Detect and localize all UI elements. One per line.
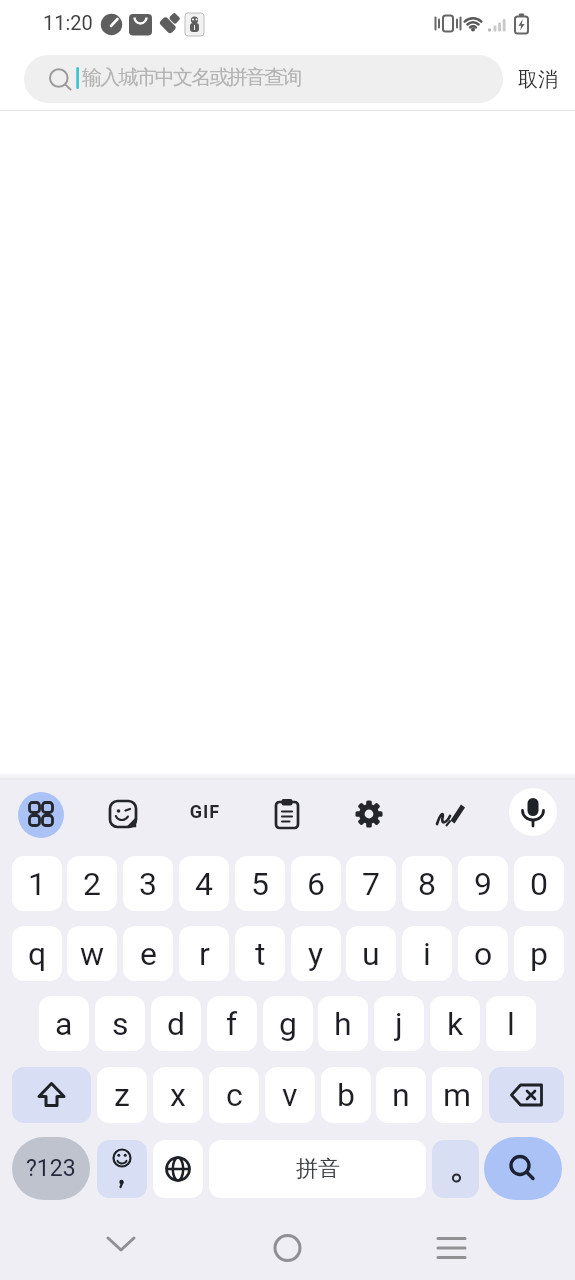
button[interactable]: h bbox=[318, 996, 368, 1051]
staticText: g bbox=[279, 1005, 297, 1043]
button[interactable]: t bbox=[235, 926, 285, 981]
button[interactable]: i bbox=[402, 926, 452, 981]
button[interactable]: 5 bbox=[235, 856, 285, 911]
staticText: u bbox=[362, 935, 380, 973]
button[interactable]: o bbox=[458, 926, 508, 981]
staticText: 取消 bbox=[518, 67, 558, 92]
button[interactable] bbox=[432, 1140, 479, 1198]
button[interactable] bbox=[18, 792, 64, 838]
staticText: h bbox=[334, 1005, 352, 1043]
button[interactable] bbox=[484, 1137, 562, 1200]
staticText: f bbox=[226, 1005, 238, 1043]
staticText: ?123 bbox=[26, 1155, 76, 1182]
button[interactable] bbox=[97, 1140, 147, 1198]
button[interactable]: z bbox=[97, 1067, 147, 1123]
button[interactable]: f bbox=[207, 996, 257, 1051]
button[interactable]: y bbox=[291, 926, 341, 981]
button[interactable]: k bbox=[430, 996, 480, 1051]
button[interactable]: g bbox=[263, 996, 313, 1051]
staticText: z bbox=[114, 1076, 130, 1114]
button[interactable] bbox=[421, 1220, 481, 1270]
staticText: i bbox=[423, 935, 431, 973]
button[interactable]: s bbox=[95, 996, 145, 1051]
staticText: 0 bbox=[530, 865, 548, 903]
staticText: v bbox=[282, 1076, 298, 1114]
button[interactable]: m bbox=[432, 1067, 482, 1123]
staticText: e bbox=[140, 935, 157, 973]
button[interactable]: x bbox=[153, 1067, 203, 1123]
staticText: 3 bbox=[139, 865, 157, 903]
button[interactable]: 9 bbox=[458, 856, 508, 911]
button[interactable] bbox=[12, 1067, 91, 1123]
staticText: 6 bbox=[307, 865, 325, 903]
staticText: a bbox=[55, 1005, 73, 1043]
button[interactable]: q bbox=[12, 926, 62, 981]
button[interactable]: 2 bbox=[67, 856, 117, 911]
button[interactable]: r bbox=[179, 926, 229, 981]
button[interactable]: c bbox=[209, 1067, 259, 1123]
button[interactable]: b bbox=[321, 1067, 371, 1123]
button[interactable] bbox=[257, 1220, 317, 1270]
button[interactable]: v bbox=[265, 1067, 315, 1123]
staticText: 2 bbox=[83, 865, 101, 903]
button[interactable]: l bbox=[486, 996, 536, 1051]
staticText: m bbox=[443, 1076, 472, 1114]
button[interactable]: u bbox=[346, 926, 396, 981]
button[interactable]: 6 bbox=[291, 856, 341, 911]
staticText: x bbox=[170, 1076, 186, 1114]
staticText: 1 bbox=[28, 865, 46, 903]
button[interactable]: ?123 bbox=[12, 1137, 90, 1200]
button[interactable]: a bbox=[39, 996, 89, 1051]
button[interactable]: n bbox=[376, 1067, 426, 1123]
staticText: s bbox=[112, 1005, 129, 1043]
staticText: 7 bbox=[362, 865, 380, 903]
staticText: k bbox=[447, 1005, 464, 1043]
button[interactable]: 1 bbox=[12, 856, 62, 911]
staticText: j bbox=[395, 1005, 403, 1043]
staticText: GIF bbox=[180, 801, 230, 822]
staticText: 拼音 bbox=[296, 1155, 340, 1183]
staticText: p bbox=[530, 935, 548, 973]
button[interactable]: j bbox=[374, 996, 424, 1051]
staticText: 8 bbox=[418, 865, 436, 903]
staticText: 输入城市中文名或拼音查询 bbox=[82, 65, 301, 90]
staticText: o bbox=[474, 935, 493, 973]
button[interactable]: 8 bbox=[402, 856, 452, 911]
staticText: w bbox=[80, 935, 105, 973]
staticText: b bbox=[337, 1076, 355, 1114]
button[interactable]: 拼音 bbox=[209, 1140, 426, 1198]
staticText: n bbox=[392, 1076, 410, 1114]
staticText: q bbox=[28, 935, 47, 973]
button[interactable]: 7 bbox=[346, 856, 396, 911]
staticText: t bbox=[255, 935, 266, 973]
button[interactable]: 3 bbox=[123, 856, 173, 911]
button[interactable]: w bbox=[67, 926, 117, 981]
staticText: l bbox=[507, 1005, 515, 1043]
button[interactable] bbox=[91, 1220, 151, 1270]
button[interactable]: p bbox=[514, 926, 564, 981]
staticText: d bbox=[167, 1005, 186, 1043]
button[interactable]: 4 bbox=[179, 856, 229, 911]
staticText: 11:20 bbox=[43, 11, 93, 34]
button[interactable]: 0 bbox=[514, 856, 564, 911]
staticText: 9 bbox=[474, 865, 492, 903]
button[interactable] bbox=[153, 1140, 203, 1198]
button[interactable] bbox=[489, 1067, 564, 1123]
staticText: 4 bbox=[195, 865, 213, 903]
button[interactable] bbox=[509, 788, 557, 836]
button[interactable]: e bbox=[123, 926, 173, 981]
staticText: y bbox=[308, 935, 324, 973]
button[interactable]: 取消 bbox=[510, 55, 566, 103]
button[interactable]: 输入城市中文名或拼音查询 bbox=[24, 55, 503, 103]
button[interactable]: d bbox=[151, 996, 201, 1051]
staticText: c bbox=[226, 1076, 243, 1114]
staticText: r bbox=[199, 935, 210, 973]
staticText: 5 bbox=[251, 865, 269, 903]
